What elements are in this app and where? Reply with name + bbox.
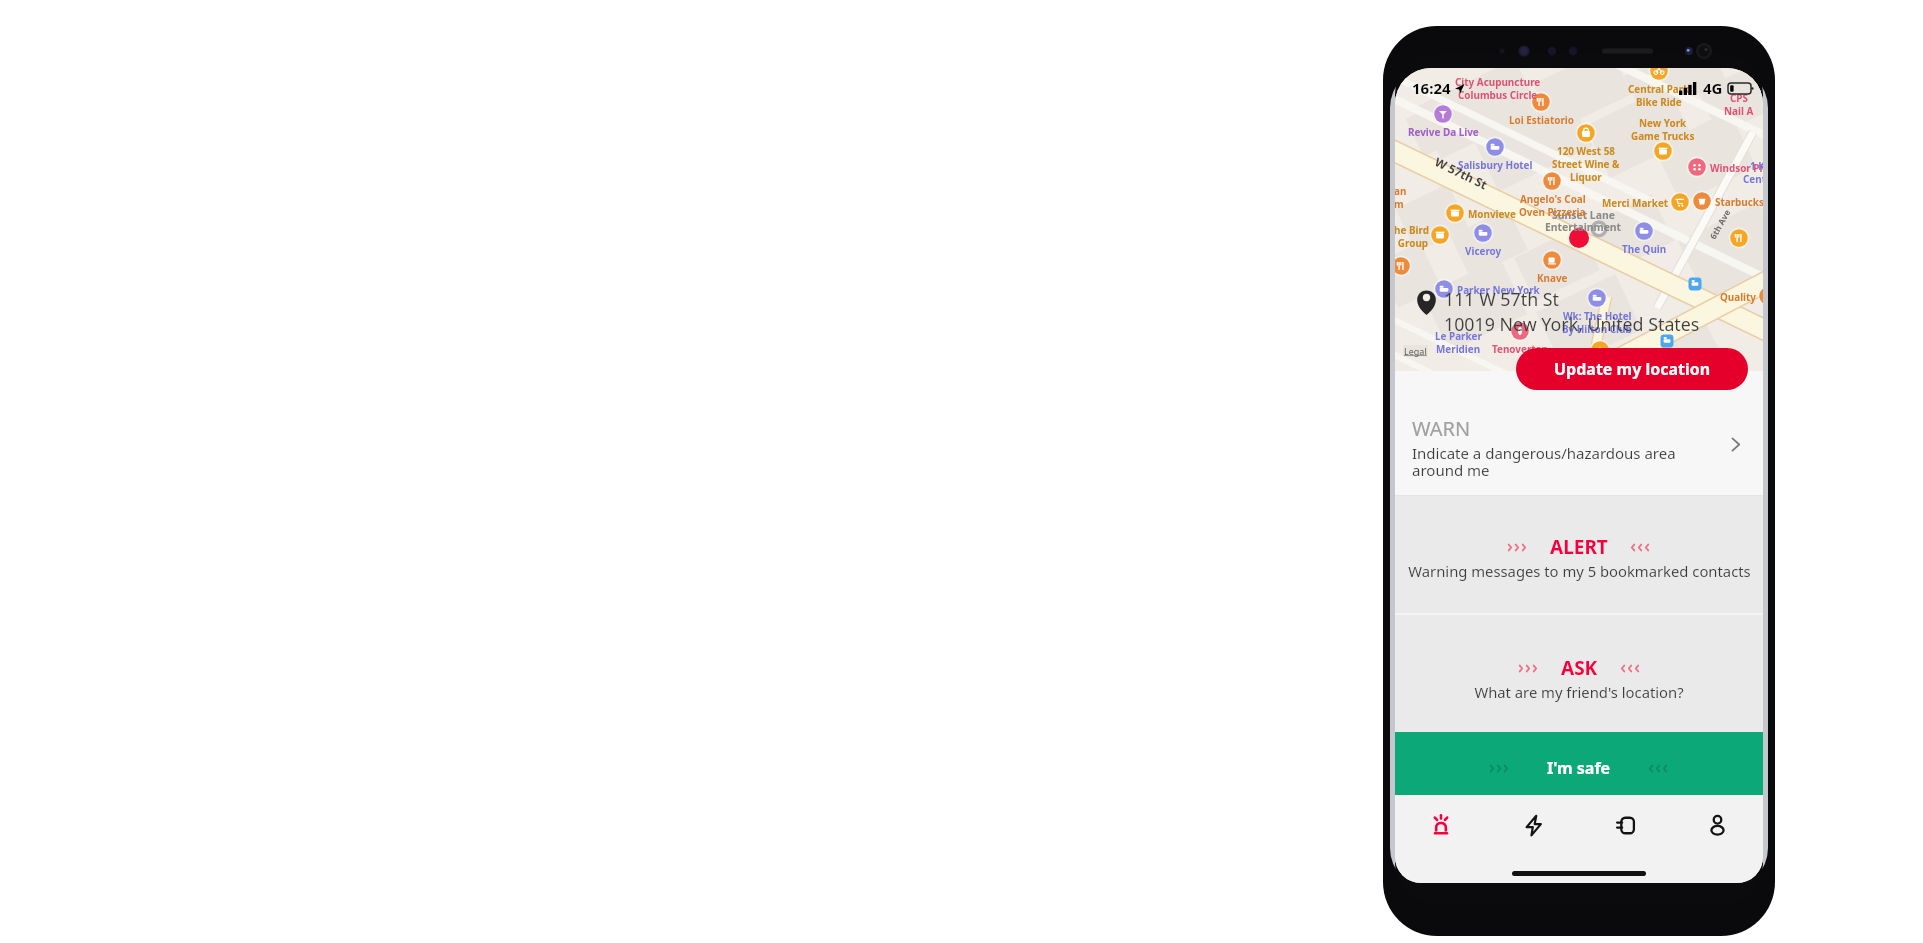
staticText: Game Trucks [1631, 129, 1695, 142]
button[interactable]: ASK [1395, 615, 1763, 732]
staticText: Indicate a dangerous/hazardous area arou… [1412, 443, 1719, 480]
staticText: 120 West 58 [1557, 144, 1615, 157]
button[interactable]: WARN [1395, 371, 1763, 495]
staticText: 6th Ave [1707, 207, 1734, 241]
button[interactable]: Contacts [1579, 795, 1671, 855]
staticText: Update my location [1554, 358, 1711, 380]
staticText: Starbucks [1715, 195, 1763, 208]
button[interactable]: Profile [1671, 795, 1763, 855]
staticText: g Group [1395, 236, 1429, 249]
staticText: Monvieve [1468, 207, 1516, 220]
staticText: Knave [1537, 271, 1568, 284]
staticText: Le Parker [1435, 329, 1482, 342]
staticText: Centr [1743, 172, 1763, 185]
staticText: ian [1395, 184, 1407, 197]
staticText: Nail A [1724, 104, 1754, 117]
staticText: CPS [1730, 91, 1748, 104]
staticText: he Bird [1395, 223, 1429, 236]
staticText: Warning messages to my 5 bookmarked cont… [1408, 561, 1751, 581]
staticText: The Quin [1622, 242, 1667, 255]
staticText: ASK [1561, 655, 1598, 681]
button[interactable]: Alarm [1395, 795, 1487, 855]
staticText: Loi Estiatorio [1509, 113, 1574, 126]
staticText: Windsor Ph [1710, 161, 1763, 174]
staticText: New York [1639, 116, 1687, 129]
staticText: Meridien [1436, 342, 1481, 355]
staticText: Wk: The Hotel [1563, 309, 1632, 322]
staticText: Central Park [1628, 82, 1690, 95]
staticText: Columbus Circle [1458, 88, 1538, 101]
button[interactable]: I'm safe [1395, 732, 1763, 795]
staticText: Bike Ride [1636, 95, 1682, 108]
staticText: By Hilton Club [1562, 322, 1632, 335]
staticText: Oven Pizzeria [1519, 205, 1586, 218]
staticText: 10019 New York, United States [1444, 312, 1700, 336]
staticText: Quality [1720, 290, 1757, 303]
staticText: Street Wine & [1552, 157, 1620, 170]
staticText: Parker New York [1457, 283, 1540, 296]
staticText: ALERT [1550, 534, 1608, 560]
staticText: Merci Market [1602, 196, 1669, 209]
staticText: 111 W 57th St [1444, 287, 1559, 311]
button[interactable]: ALERT [1395, 496, 1763, 613]
staticText: Viceroy [1465, 244, 1502, 257]
staticText: 1 K [1750, 159, 1763, 172]
staticText: Revive Da Live [1408, 125, 1479, 138]
staticText: 4G [1703, 78, 1723, 98]
staticText: Salisbury Hotel [1458, 158, 1533, 171]
staticText: What are my friend's location? [1474, 682, 1684, 702]
staticText: Liquor [1570, 170, 1602, 183]
button[interactable]: Update my location [1516, 348, 1748, 390]
staticText: 16:24 [1412, 78, 1451, 98]
staticText: Entertainment [1545, 220, 1622, 234]
staticText: WARN [1412, 415, 1471, 442]
staticText: City Acupuncture [1455, 75, 1541, 88]
button[interactable]: Flash alert [1487, 795, 1579, 855]
staticText: I'm safe [1547, 757, 1611, 779]
staticText: Legal [1404, 345, 1427, 357]
staticText: Angelo's Coal [1520, 192, 1586, 205]
staticText: Tenoverten [1492, 342, 1548, 355]
staticText: W 57th St [1432, 153, 1491, 193]
staticText: m [1395, 197, 1404, 210]
staticText: Sunset Lane [1552, 208, 1615, 222]
